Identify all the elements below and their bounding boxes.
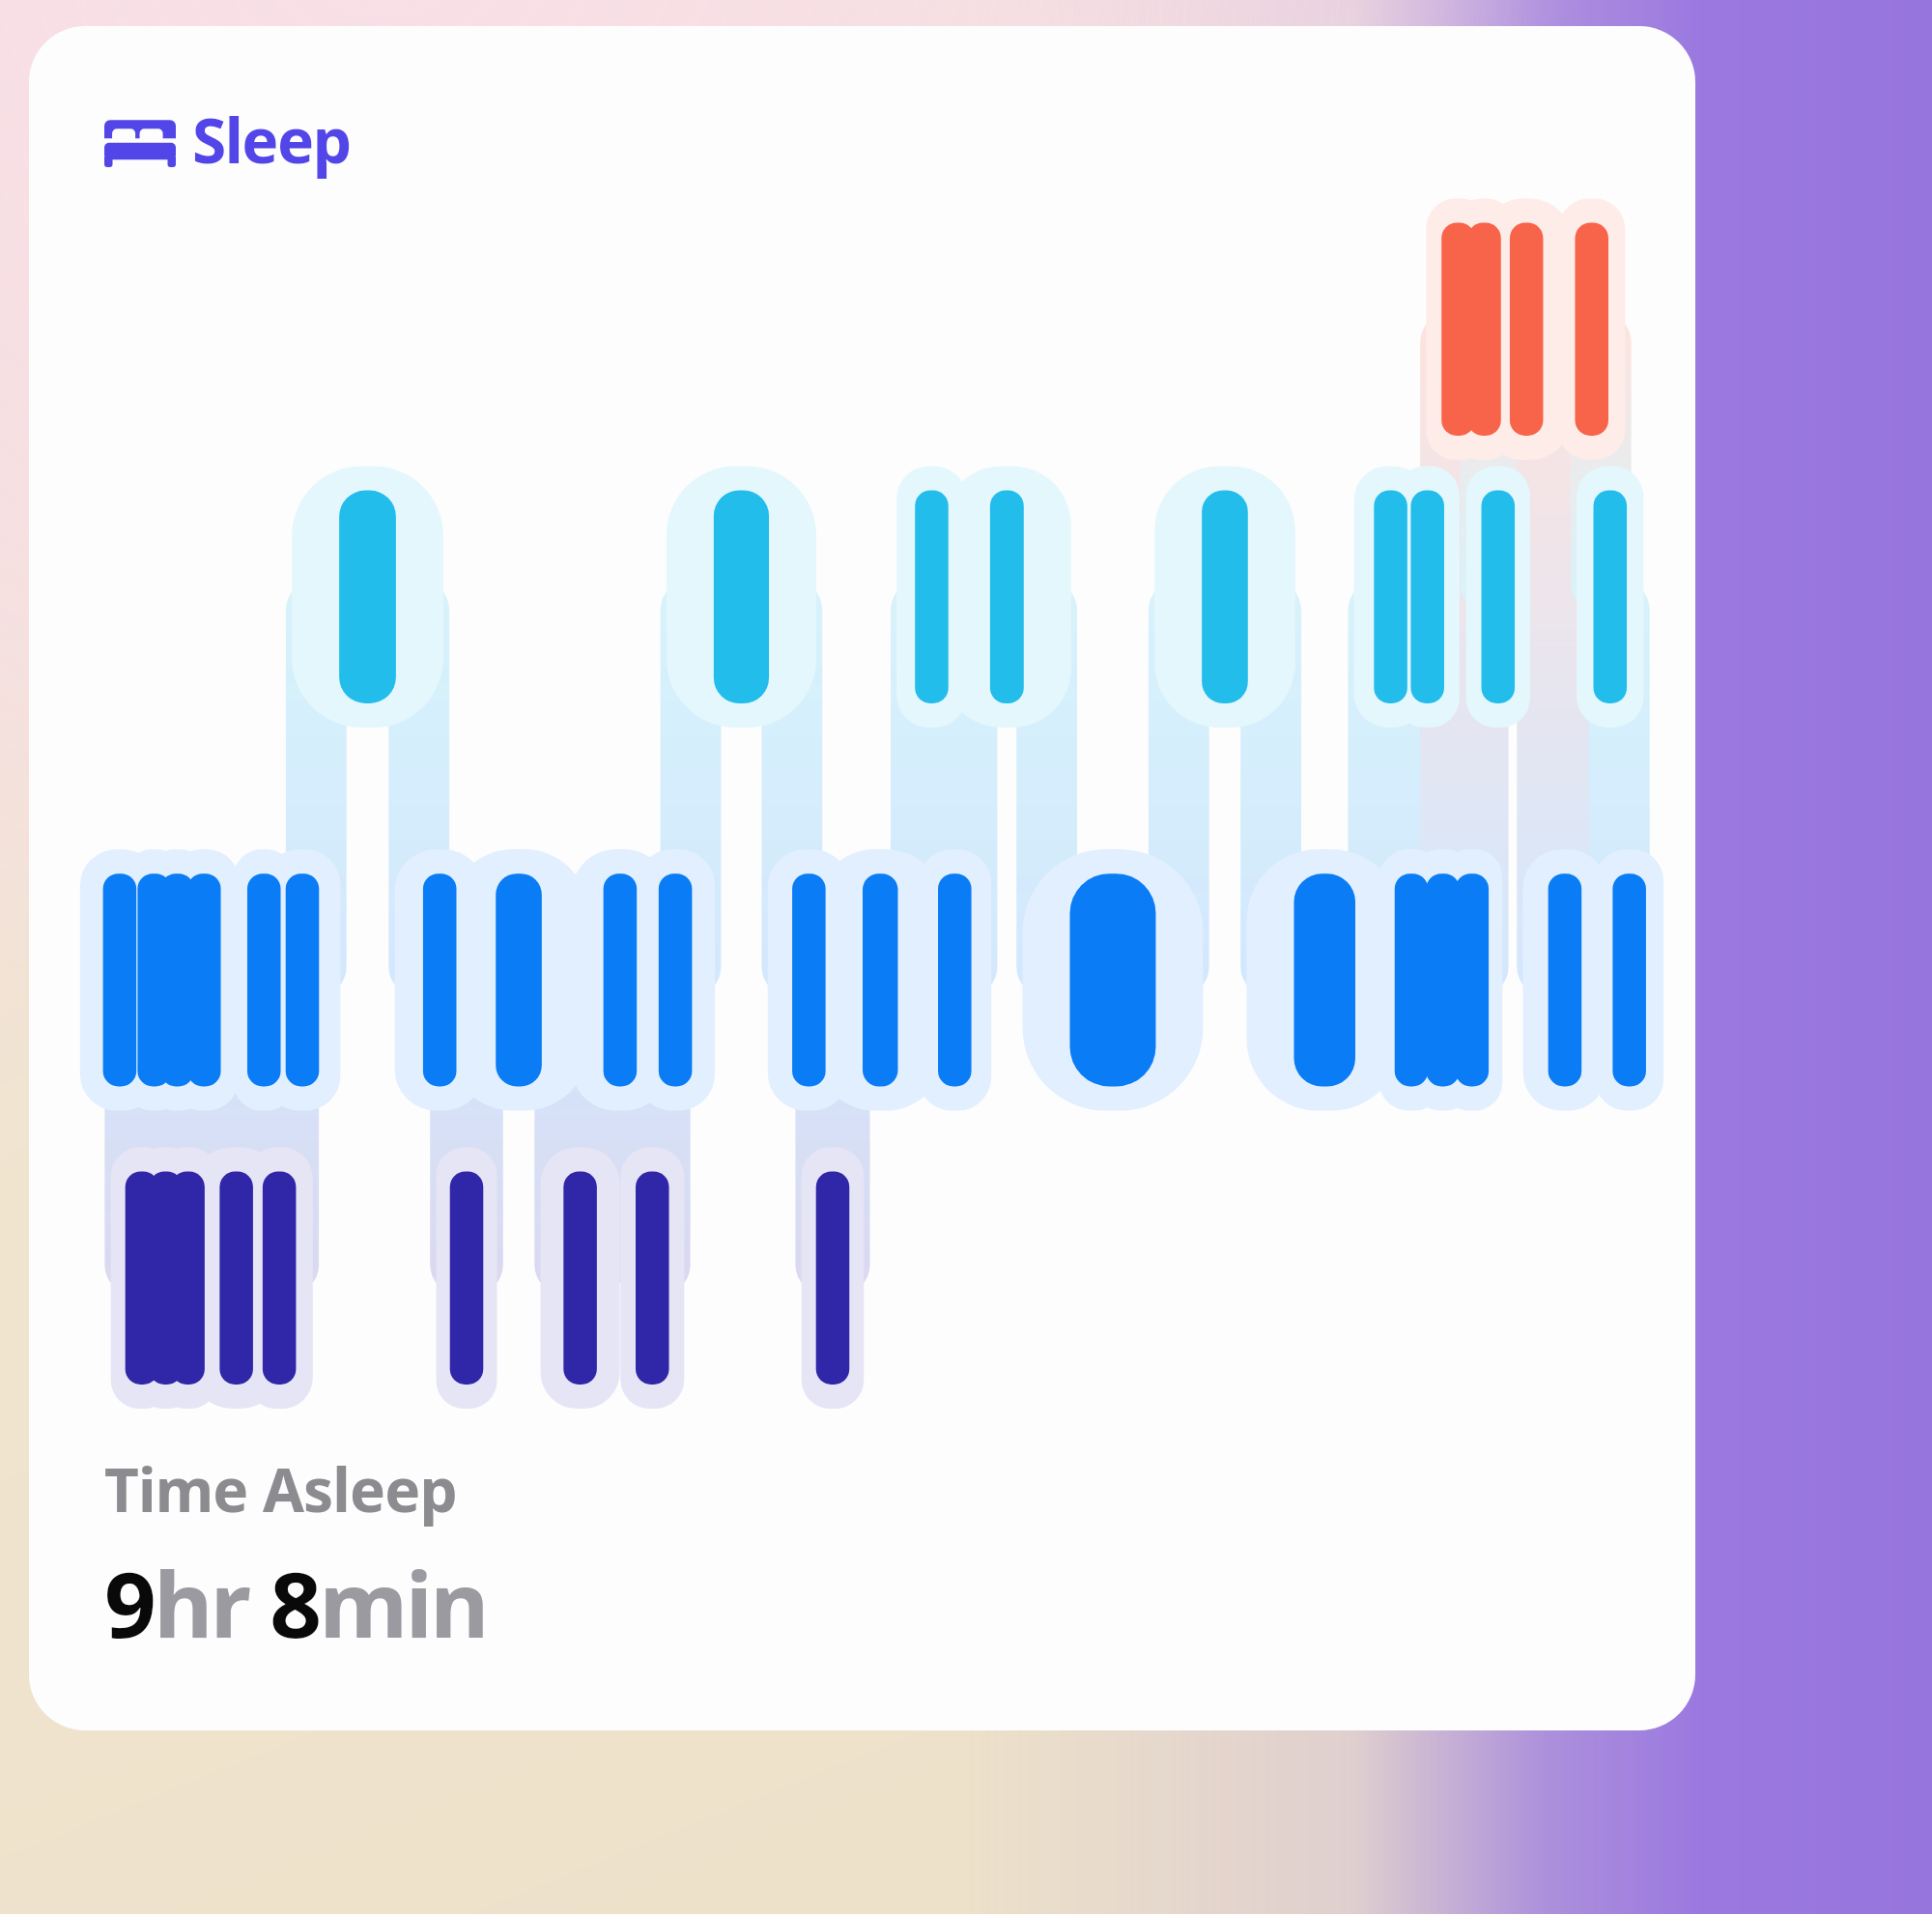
staticText: Sleep xyxy=(192,98,351,182)
other: Sleep xyxy=(104,113,176,167)
button[interactable]: Sleep xyxy=(29,26,1695,1730)
staticText: 9hr 8min xyxy=(104,1541,487,1665)
staticText: Time Asleep xyxy=(104,1448,457,1529)
